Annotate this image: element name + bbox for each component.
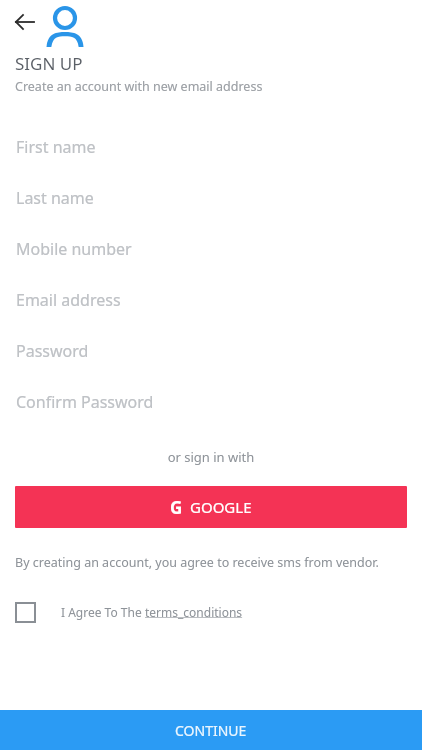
staticText: GOOGLE bbox=[190, 497, 252, 517]
button[interactable]: Confirm Password bbox=[0, 376, 422, 427]
button[interactable]: Password bbox=[0, 325, 422, 376]
button[interactable]: First name bbox=[0, 121, 422, 172]
staticText: Confirm Password bbox=[16, 391, 154, 413]
staticText: or sign in with bbox=[0, 448, 422, 466]
staticText: G bbox=[170, 496, 183, 519]
button[interactable]: Mobile number bbox=[0, 223, 422, 274]
staticText: CONTINUE bbox=[175, 721, 247, 740]
button[interactable]: Email address bbox=[0, 274, 422, 325]
button[interactable]: I agree checkbox bbox=[16, 603, 35, 622]
staticText: Password bbox=[16, 340, 89, 362]
staticText: I Agree To The bbox=[61, 604, 145, 620]
button[interactable]: Last name bbox=[0, 172, 422, 223]
button[interactable]: CONTINUE bbox=[0, 710, 422, 750]
staticText: First name bbox=[16, 136, 96, 158]
staticText: Email address bbox=[16, 289, 121, 311]
button[interactable]: G bbox=[15, 486, 407, 528]
staticText: By creating an account, you agree to rec… bbox=[15, 554, 379, 571]
staticText: Mobile number bbox=[16, 238, 132, 260]
staticText: SIGN UP bbox=[15, 52, 83, 75]
button[interactable]: Back bbox=[8, 5, 42, 39]
button[interactable]: terms_conditions bbox=[145, 604, 243, 620]
staticText: Create an account with new email address bbox=[15, 78, 263, 95]
staticText: Last name bbox=[16, 187, 94, 209]
